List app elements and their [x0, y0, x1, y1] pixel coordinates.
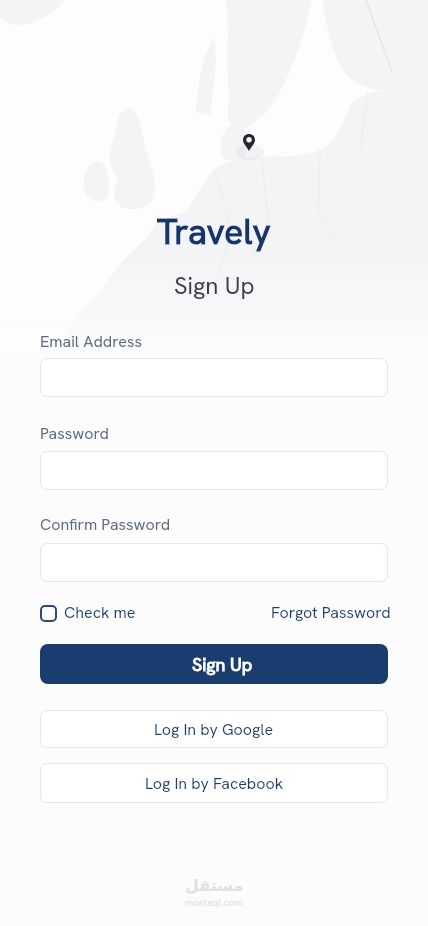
- staticText: Log In by Google: [154, 719, 274, 740]
- staticText: Sign Up: [192, 653, 253, 676]
- staticText: Confirm Password: [40, 514, 171, 535]
- staticText: Travely: [157, 209, 271, 255]
- staticText: Sign Up: [174, 270, 255, 301]
- staticText: mostaql.com: [185, 896, 243, 909]
- staticText: Check me: [64, 602, 136, 623]
- staticText: Password: [40, 423, 109, 444]
- staticText: Log In by Facebook: [145, 773, 284, 794]
- staticText: Email Address: [40, 331, 142, 352]
- staticText: مستقل: [185, 876, 244, 895]
- staticText: Forgot Password: [271, 602, 391, 623]
